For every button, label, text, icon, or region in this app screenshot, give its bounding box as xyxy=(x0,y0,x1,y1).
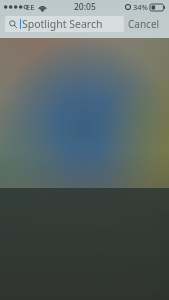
staticText: 20:05 xyxy=(74,1,96,13)
staticText: 34% xyxy=(133,2,148,12)
button[interactable]: Spotlight Search xyxy=(5,16,124,32)
button[interactable]: Cancel xyxy=(124,16,164,32)
staticText: Spotlight Search xyxy=(22,17,103,31)
staticText: Cancel xyxy=(128,17,160,31)
staticText: EE xyxy=(26,2,35,12)
